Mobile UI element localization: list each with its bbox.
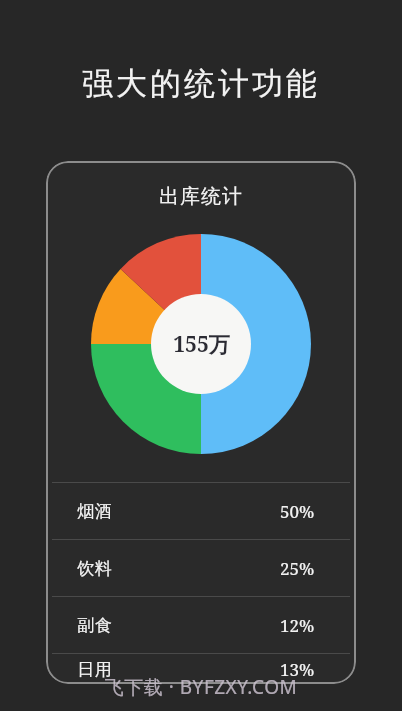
staticText: 12%: [280, 614, 315, 637]
staticText: 出库统计: [46, 184, 356, 209]
staticText: 日用: [77, 659, 112, 680]
staticText: 25%: [280, 557, 315, 580]
staticText: 155万: [173, 330, 230, 359]
staticText: 13%: [280, 658, 315, 681]
staticText: 强大的统计功能: [0, 64, 402, 103]
button[interactable]: 日用: [46, 654, 356, 684]
staticText: 副食: [77, 615, 112, 636]
button[interactable]: 副食: [46, 597, 356, 653]
staticText: 烟酒: [77, 501, 112, 522]
button[interactable]: 出库统计: [46, 161, 356, 684]
staticText: 50%: [280, 500, 315, 523]
other: 出库统计饼图: [91, 234, 311, 454]
staticText: 饮料: [77, 558, 112, 579]
staticText: 飞下载 · BYFZXY.COM: [0, 674, 402, 700]
button[interactable]: 烟酒: [46, 483, 356, 539]
button[interactable]: 饮料: [46, 540, 356, 596]
